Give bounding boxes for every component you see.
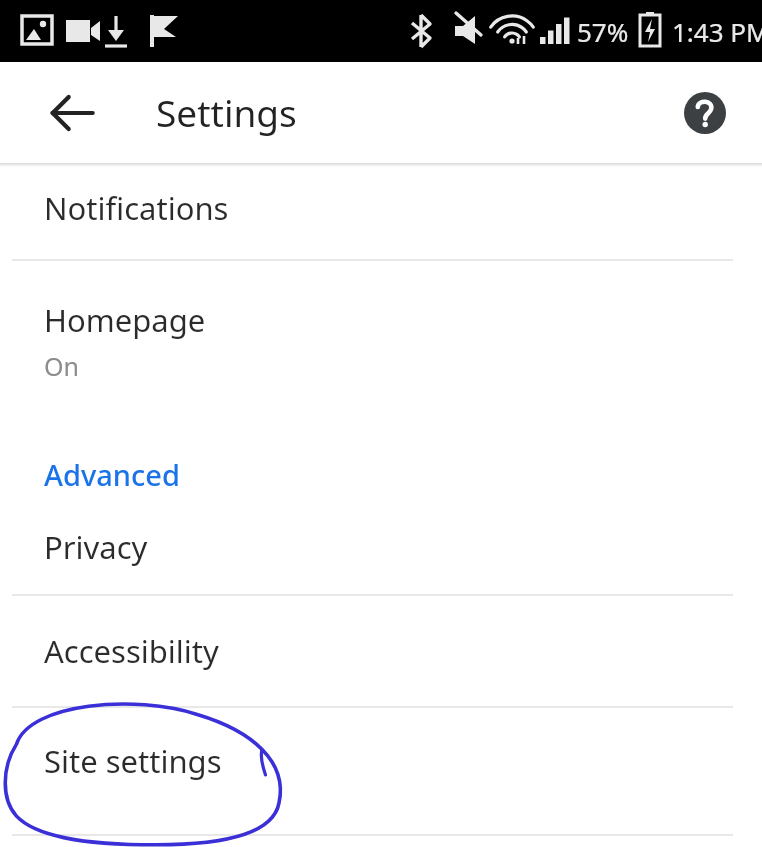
button[interactable]: Back — [36, 77, 108, 149]
staticText: Settings — [156, 87, 297, 137]
staticText: 57% — [577, 14, 629, 49]
button[interactable]: Site settings — [0, 708, 762, 834]
button[interactable]: Privacy — [0, 508, 762, 594]
button[interactable]: Help — [672, 80, 738, 146]
staticText: Accessibility — [44, 630, 219, 672]
staticText: Notifications — [44, 187, 229, 229]
button[interactable]: Notifications — [0, 167, 762, 259]
staticText: Advanced — [44, 455, 180, 494]
button[interactable]: Accessibility — [0, 596, 762, 706]
staticText: Site settings — [44, 740, 222, 782]
staticText: On — [44, 349, 79, 383]
staticText: Privacy — [44, 526, 148, 568]
staticText: Homepage — [44, 299, 206, 341]
staticText: 1:43 PM — [672, 14, 762, 49]
button[interactable]: Homepage — [0, 261, 762, 393]
